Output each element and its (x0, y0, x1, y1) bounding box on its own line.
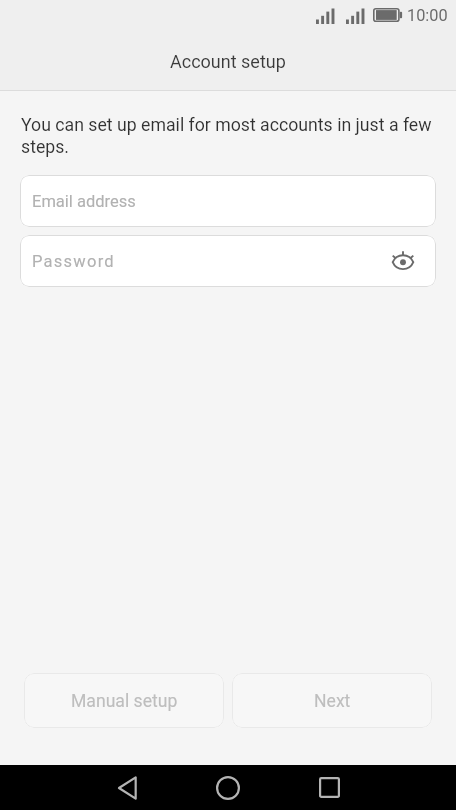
button[interactable]: Password (20, 235, 436, 287)
staticText: Manual setup (71, 691, 178, 712)
staticText: Email address (32, 192, 136, 211)
button[interactable]: Email address (20, 175, 436, 227)
button[interactable]: Back (93, 765, 161, 810)
staticText: Next (314, 691, 351, 712)
staticText: You can set up email for most accounts i… (21, 115, 432, 157)
button[interactable]: Manual setup (24, 673, 224, 728)
button[interactable]: Recents (295, 765, 363, 810)
staticText: 10:00 (407, 6, 448, 25)
button[interactable]: Home (194, 765, 262, 810)
button[interactable]: Show password (387, 245, 419, 277)
staticText: Account setup (170, 51, 286, 72)
button[interactable]: Next (232, 673, 432, 728)
staticText: Password (32, 252, 115, 271)
